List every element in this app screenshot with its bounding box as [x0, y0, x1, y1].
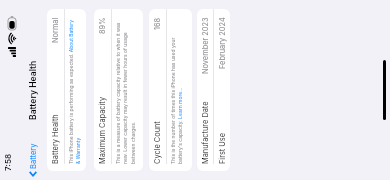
staticText: February 2024 — [218, 17, 227, 69]
staticText: 89% — [98, 17, 107, 34]
staticText: Battery Health — [28, 60, 38, 120]
staticText: Normal — [51, 17, 60, 43]
staticText: Manufacture Date — [201, 101, 210, 164]
staticText: Battery Health — [51, 114, 60, 164]
button[interactable]: Manufacture Date — [197, 17, 213, 164]
staticText: Battery — [29, 143, 38, 169]
staticText: First Use — [218, 132, 227, 164]
button[interactable]: Cycle Count — [149, 17, 166, 164]
button[interactable]: First Use — [214, 17, 230, 164]
button[interactable]: Battery — [25, 142, 41, 178]
staticText: 168 — [153, 17, 162, 30]
button[interactable]: Battery Health — [47, 17, 64, 164]
staticText: 7:58 — [3, 153, 13, 171]
staticText: This iPhone battery is performing as exp… — [68, 16, 82, 164]
button[interactable]: Maximum Capacity — [94, 17, 111, 164]
staticText: This is the number of times this iPhone … — [170, 16, 184, 164]
staticText: Maximum Capacity — [98, 96, 107, 164]
staticText: November 2023 — [201, 17, 210, 74]
staticText: Cycle Count — [153, 121, 162, 164]
staticText: This is a measure of battery capacity re… — [115, 16, 137, 164]
